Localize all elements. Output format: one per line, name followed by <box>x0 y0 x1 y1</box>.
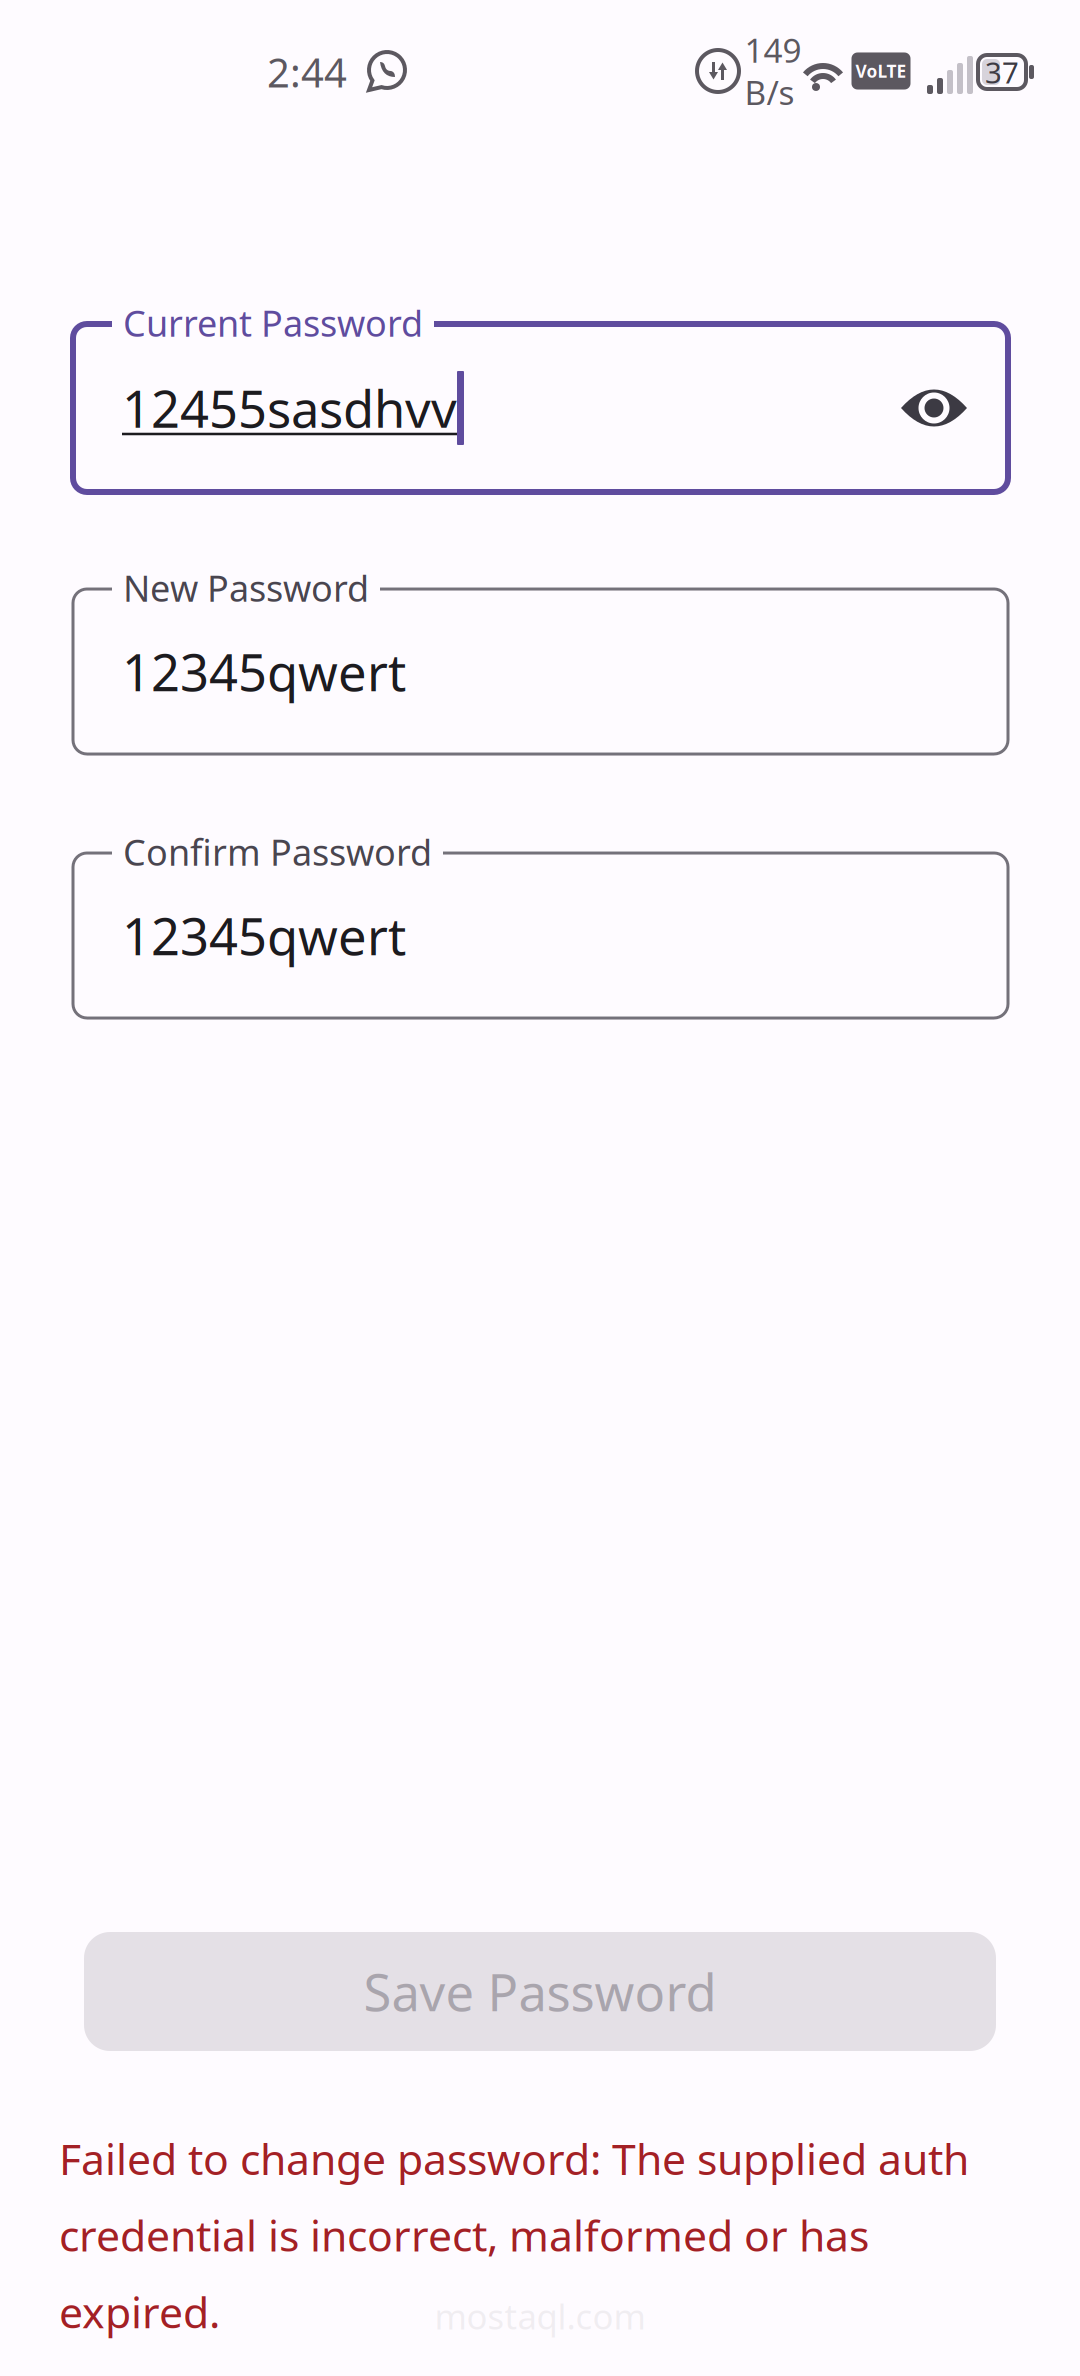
staticText: mostaql.com <box>434 2293 645 2339</box>
staticText: 37 <box>985 52 1019 91</box>
staticText: Failed to change password: The supplied … <box>59 2130 969 2187</box>
staticText: B/s <box>744 70 794 114</box>
staticText: 149 <box>744 28 801 72</box>
staticText: credential is incorrect, malformed or ha… <box>59 2207 869 2263</box>
button[interactable]: Save Password <box>84 1932 996 2051</box>
staticText: Confirm Password <box>123 828 432 876</box>
staticText: New Password <box>123 564 369 612</box>
staticText: VoLTE <box>855 59 906 82</box>
staticText: 12345qwert <box>122 638 406 705</box>
staticText: 12345qwert <box>122 902 406 969</box>
staticText: Save Password <box>363 1958 716 2025</box>
staticText: expired. <box>59 2283 220 2340</box>
button[interactable]: 12345qwert <box>73 853 1008 1018</box>
button[interactable]: 12455sasdhvv <box>73 324 1008 492</box>
button[interactable]: Show password <box>886 360 982 456</box>
button[interactable]: 12345qwert <box>73 589 1008 754</box>
staticText: 2:44 <box>267 45 347 98</box>
staticText: Current Password <box>123 299 423 347</box>
staticText: 12455sasdhvv <box>122 374 457 442</box>
